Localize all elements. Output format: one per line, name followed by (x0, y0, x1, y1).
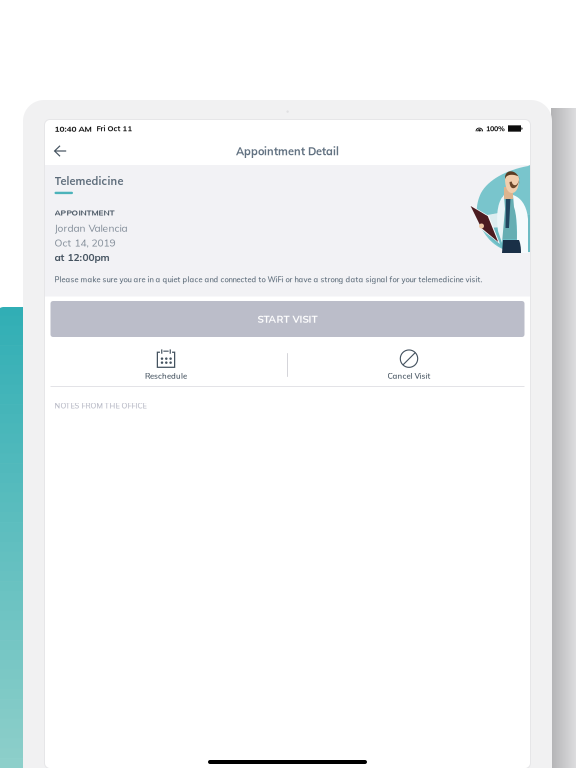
staticText: Jordan Valencia (54, 221, 127, 234)
staticText: NOTES FROM THE OFFICE (54, 401, 146, 410)
staticText: APPOINTMENT (54, 207, 114, 217)
button[interactable]: Cancel Visit (288, 349, 530, 381)
button[interactable]: Back (45, 138, 75, 164)
staticText: START VISIT (257, 313, 317, 325)
staticText: Please make sure you are in a quiet plac… (54, 275, 482, 284)
staticText: Oct 14, 2019 (54, 236, 115, 249)
staticText: Reschedule (145, 371, 187, 381)
staticText: Fri Oct 11 (96, 124, 132, 133)
staticText: 100% (486, 124, 505, 133)
staticText: 10:40 AM (54, 123, 91, 134)
staticText: Telemedicine (54, 174, 123, 188)
button[interactable]: START VISIT (50, 301, 524, 337)
staticText: at 12:00pm (54, 251, 109, 264)
staticText: Cancel Visit (387, 371, 430, 381)
button[interactable]: Reschedule (45, 349, 287, 381)
staticText: Appointment Detail (236, 144, 339, 158)
